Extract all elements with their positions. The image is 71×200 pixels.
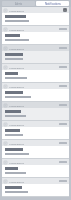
button[interactable]: Notifications <box>2 102 69 121</box>
staticText: Alerts <box>15 2 23 6</box>
staticText: Notifications <box>9 142 24 145</box>
button[interactable]: Notifications <box>2 121 69 140</box>
staticText: Notifications <box>9 85 24 88</box>
staticText: Notifications <box>9 47 24 50</box>
staticText: Notifications <box>9 161 24 164</box>
button[interactable]: Notifications <box>36 1 69 6</box>
button[interactable]: Alerts <box>2 1 35 6</box>
staticText: Notifications <box>9 9 24 12</box>
staticText: Notifications <box>9 180 24 183</box>
button[interactable]: Notifications <box>2 159 69 178</box>
button[interactable]: Notifications <box>2 83 69 102</box>
staticText: Notifications <box>45 2 61 6</box>
button[interactable]: Notifications <box>2 178 69 197</box>
staticText: Notifications <box>9 66 24 69</box>
button[interactable]: Notifications <box>2 26 69 45</box>
staticText: Notifications <box>9 104 24 107</box>
button[interactable]: Notifications <box>2 64 69 83</box>
staticText: Notifications <box>9 28 24 31</box>
button[interactable]: Notifications <box>2 7 69 26</box>
staticText: Notifications <box>9 123 24 126</box>
button[interactable]: Settings <box>63 8 67 12</box>
button[interactable]: Notifications <box>2 140 69 159</box>
button[interactable]: Notifications <box>2 45 69 64</box>
